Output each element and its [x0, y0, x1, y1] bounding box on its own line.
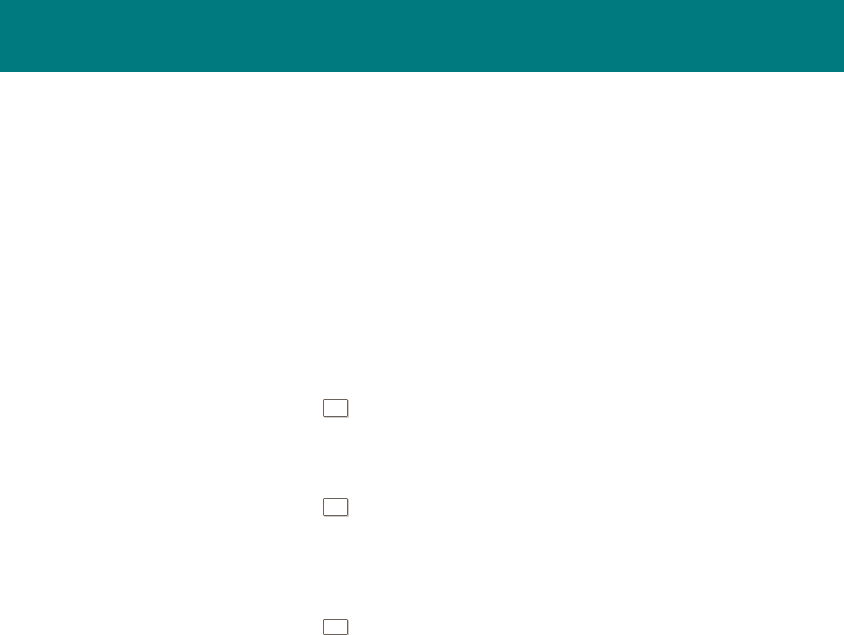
button[interactable]: Input field 2 — [323, 498, 349, 517]
button[interactable]: Input field 3 — [323, 619, 349, 635]
button[interactable]: Input field 1 — [323, 399, 349, 418]
